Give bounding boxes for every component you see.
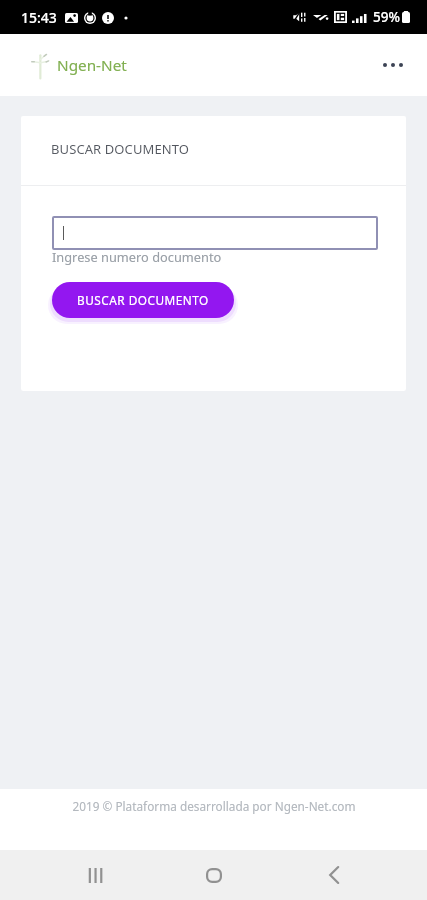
staticText: BUSCAR DOCUMENTO <box>51 140 190 158</box>
button[interactable]: BUSCAR DOCUMENTO <box>52 282 234 318</box>
staticText: BUSCAR DOCUMENTO <box>77 292 209 308</box>
button[interactable] <box>52 216 378 250</box>
button[interactable]: Ngen-Net <box>31 52 127 79</box>
staticText: 59% <box>373 8 400 26</box>
button[interactable]: Back <box>310 851 358 899</box>
staticText: 2019 © Plataforma desarrollada por Ngen-… <box>72 798 356 814</box>
staticText: Ingrese numero documento <box>52 248 222 265</box>
staticText: 15:43 <box>21 8 57 27</box>
button[interactable]: More options <box>371 43 415 87</box>
staticText: Ngen-Net <box>57 55 127 76</box>
button[interactable]: Recent apps <box>71 851 119 899</box>
button[interactable]: Home <box>190 851 238 899</box>
